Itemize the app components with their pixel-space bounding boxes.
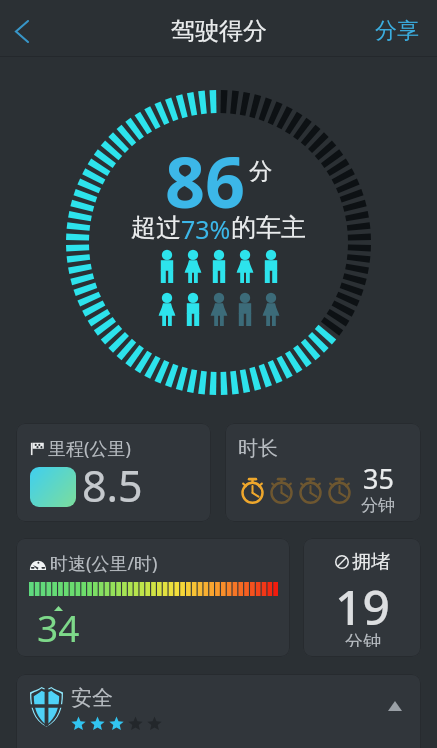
staticText: 19 [335,574,390,639]
staticText: 34 [37,602,80,648]
button[interactable]: 安全 [16,674,421,748]
staticText: 时长 [238,436,278,461]
staticText: 驾驶得分 [171,16,267,46]
staticText: 的车主 [231,212,306,243]
staticText: 拥堵 [352,550,390,574]
staticText: 35 [363,460,394,497]
staticText: 86 [165,133,246,228]
button[interactable]: 时长 [225,423,421,522]
staticText: 分 [249,157,272,186]
staticText: 分享 [375,17,419,45]
button[interactable]: 拥堵 [303,538,421,657]
staticText: 安全 [71,685,113,711]
staticText: 超过 [131,212,181,243]
button[interactable]: 分享 [357,5,437,53]
button[interactable]: 时速(公里/时) [16,538,290,657]
button[interactable]: 里程(公里) [16,423,211,522]
staticText: 分钟 [361,495,395,516]
staticText: 时速(公里/时) [50,551,158,576]
staticText: 73% [181,212,231,246]
staticText: 里程(公里) [48,436,131,461]
button[interactable]: Collapse [381,692,409,720]
staticText: 分钟 [345,631,381,647]
staticText: 8.5 [82,456,143,515]
button[interactable]: Back [0,1,56,57]
